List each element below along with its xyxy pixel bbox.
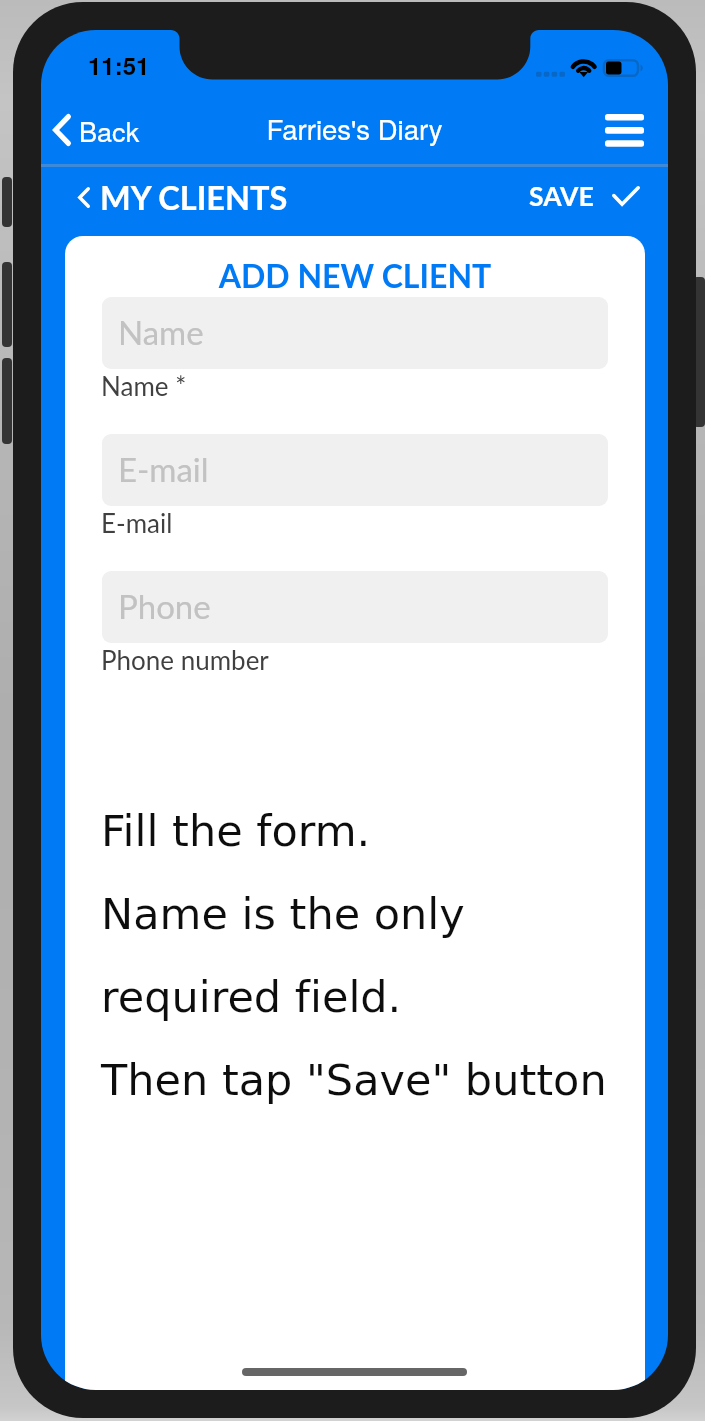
staticText: E-mail — [118, 449, 209, 489]
staticText: Name * — [101, 370, 187, 401]
button[interactable]: Name — [102, 297, 608, 369]
button[interactable]: Menu — [595, 104, 654, 157]
button[interactable]: E-mail — [102, 434, 608, 506]
staticText: Back — [79, 111, 140, 150]
staticText: ADD NEW CLIENT — [65, 256, 645, 294]
staticText: 11:51 — [88, 48, 150, 82]
button[interactable]: MY CLIENTS — [78, 172, 288, 223]
button[interactable]: Back — [48, 106, 145, 157]
staticText: Then tap "Save" button — [101, 1055, 607, 1105]
staticText: Phone number — [101, 644, 269, 675]
staticText: Phone — [118, 586, 211, 626]
staticText: E-mail — [101, 507, 173, 538]
staticText: Farries's Diary — [41, 108, 668, 147]
staticText: SAVE — [529, 180, 594, 212]
staticText: Name is the only — [101, 889, 465, 939]
staticText: Fill the form. — [101, 806, 371, 856]
staticText: required field. — [101, 972, 402, 1022]
button[interactable]: SAVE — [527, 174, 642, 218]
staticText: Name — [118, 312, 204, 352]
staticText: MY CLIENTS — [100, 178, 288, 217]
button[interactable]: Phone — [102, 571, 608, 643]
